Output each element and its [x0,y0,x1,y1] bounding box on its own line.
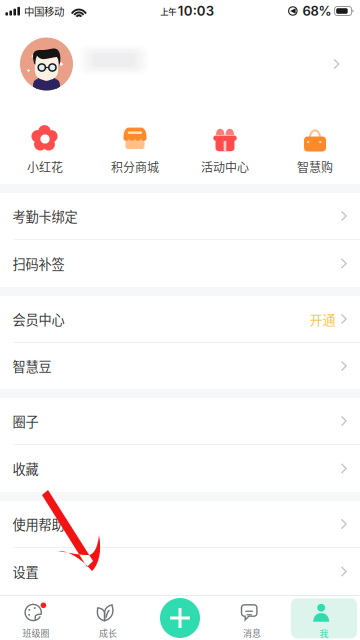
staticText: 10:03 [178,3,214,19]
button[interactable]: 班级圈 [0,596,72,640]
staticText: 会员中心 [12,309,64,328]
staticText: 班级圈 [22,626,49,639]
button[interactable]: 考勤卡绑定 [0,193,360,240]
button[interactable]: 小红花 [0,106,90,184]
button[interactable]: 消息 [216,596,288,640]
staticText: 智慧购 [297,158,333,175]
button[interactable]: 新建 [158,596,202,640]
button[interactable]: 会员中心 [0,296,360,343]
button[interactable]: 智慧购 [270,106,360,184]
staticText: 活动中心 [201,158,249,175]
staticText: 上午 [160,5,176,17]
staticText: 积分商城 [111,158,159,175]
button[interactable]: 我 [288,596,360,640]
staticText: 考勤卡绑定 [12,206,77,225]
staticText: 消息 [243,626,261,639]
button[interactable]: 圈子 [0,398,360,445]
staticText: 设置 [12,562,38,581]
button[interactable] [0,22,360,106]
staticText: 我 [319,627,328,640]
button[interactable]: 成长 [72,596,144,640]
staticText: 使用帮助 [12,514,64,533]
staticText: 68% [303,3,332,19]
staticText: 圈子 [12,411,38,430]
staticText: 收藏 [12,459,38,478]
button[interactable]: 收藏 [0,445,360,492]
staticText: 小红花 [27,158,63,175]
button[interactable]: 扫码补签 [0,240,360,287]
button[interactable]: 积分商城 [90,106,180,184]
staticText: 成长 [99,626,117,639]
staticText: 扫码补签 [12,254,64,273]
button[interactable]: 设置 [0,548,360,595]
staticText: 开通 [309,310,335,328]
staticText: 中国移动 [24,3,64,19]
staticText: 智慧豆 [12,356,51,375]
button[interactable]: 使用帮助 [0,501,360,548]
button[interactable]: 活动中心 [180,106,270,184]
button[interactable]: 智慧豆 [0,343,360,389]
